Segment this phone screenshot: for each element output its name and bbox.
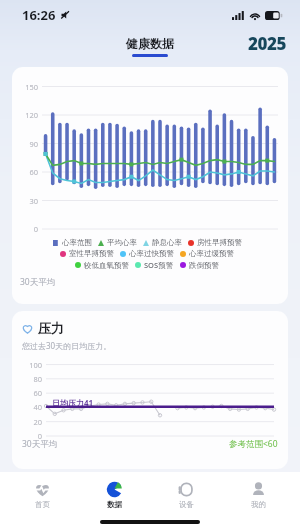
staticText: 平均心率 bbox=[107, 238, 137, 247]
staticText: 参考范围<60 bbox=[229, 438, 278, 450]
staticText: 房性早搏预警 bbox=[197, 238, 242, 247]
staticText: 100 bbox=[22, 360, 42, 370]
staticText: 首页 bbox=[35, 500, 50, 509]
other: Profile bbox=[250, 481, 267, 498]
staticText: 您过去30天的日均压力。 bbox=[22, 340, 112, 351]
staticText: 150 bbox=[12, 82, 38, 92]
staticText: 心率过快预警 bbox=[129, 249, 174, 258]
staticText: 30天平均 bbox=[22, 438, 58, 450]
staticText: 日均压力41 bbox=[52, 397, 94, 408]
staticText: SOS预警 bbox=[144, 260, 174, 270]
other: Device bbox=[178, 481, 195, 498]
staticText: 静息心率 bbox=[152, 238, 182, 247]
staticText: 90 bbox=[12, 139, 38, 149]
staticText: 较低血氧预警 bbox=[84, 261, 129, 270]
staticText: 40 bbox=[22, 402, 42, 412]
staticText: 我的 bbox=[251, 500, 266, 509]
button[interactable]: 睡眠 bbox=[12, 476, 288, 516]
button[interactable]: 健康数据 bbox=[126, 36, 174, 57]
staticText: 0 bbox=[12, 224, 38, 234]
staticText: 60 bbox=[22, 388, 42, 398]
staticText: 2025 bbox=[248, 32, 286, 55]
other: Data bbox=[106, 481, 123, 498]
staticText: 睡眠 bbox=[38, 485, 64, 501]
button[interactable]: Year 2025 bbox=[248, 32, 286, 55]
staticText: 30 bbox=[12, 196, 38, 206]
button[interactable]: Device bbox=[156, 481, 216, 509]
button[interactable]: 150 bbox=[12, 67, 288, 304]
staticText: 16:26 bbox=[22, 6, 56, 24]
button[interactable]: Home bbox=[12, 481, 72, 509]
staticText: 30天平均 bbox=[20, 276, 56, 288]
staticText: 健康数据 bbox=[126, 36, 174, 51]
staticText: 心率范围 bbox=[62, 238, 92, 247]
staticText: 120 bbox=[12, 110, 38, 120]
staticText: 0 bbox=[22, 431, 42, 441]
staticText: 心率过缓预警 bbox=[189, 249, 234, 258]
staticText: 跌倒预警 bbox=[189, 261, 219, 270]
button[interactable]: 压力 bbox=[12, 311, 288, 469]
staticText: 60 bbox=[12, 167, 38, 177]
staticText: 80 bbox=[22, 374, 42, 384]
staticText: 20 bbox=[22, 417, 42, 427]
button[interactable]: Profile bbox=[228, 481, 288, 509]
staticText: 室性早搏预警 bbox=[69, 249, 114, 258]
staticText: 压力 bbox=[38, 320, 64, 336]
staticText: 数据 bbox=[107, 500, 122, 509]
button[interactable]: Data bbox=[84, 481, 144, 509]
staticText: 设备 bbox=[179, 500, 194, 509]
other: Home bbox=[34, 481, 51, 498]
